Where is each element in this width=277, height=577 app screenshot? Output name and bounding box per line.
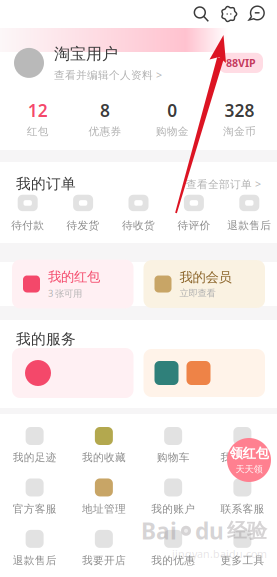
- button[interactable]: 12: [4, 99, 71, 138]
- button[interactable]: 退款售后: [222, 193, 277, 232]
- button[interactable]: 购物车: [138, 427, 208, 464]
- staticText: 购物金: [156, 125, 189, 138]
- staticText: 红包: [27, 125, 49, 138]
- staticText: 立即查看: [179, 287, 215, 299]
- button[interactable]: 查看全部订单 >: [186, 177, 261, 191]
- button[interactable]: 我的收藏: [69, 427, 138, 464]
- button[interactable]: 我的会员: [143, 260, 265, 308]
- staticText: 更多工具: [220, 554, 264, 567]
- button[interactable]: 我要开店: [69, 530, 138, 567]
- staticText: 退款售后: [227, 219, 271, 232]
- staticText: 3 张可用: [48, 287, 82, 299]
- button[interactable]: 待收货: [111, 193, 166, 232]
- button[interactable]: 退款售后: [0, 530, 69, 567]
- staticText: 待付款: [11, 219, 44, 232]
- staticText: 优惠券: [88, 125, 121, 138]
- staticText: 我的足迹: [13, 451, 57, 464]
- button[interactable]: 我的账户: [138, 478, 208, 515]
- staticText: 待收货: [122, 219, 155, 232]
- staticText: 地址管理: [82, 502, 126, 515]
- button[interactable]: 0: [138, 99, 206, 138]
- staticText: Bai: [141, 516, 177, 546]
- button[interactable]: 更多工具: [208, 530, 277, 567]
- staticText: 经验: [227, 518, 267, 543]
- staticText: 购物车: [157, 451, 190, 464]
- staticText: 我的优惠: [151, 554, 195, 567]
- staticText: 查看全部订单 >: [186, 177, 261, 191]
- button[interactable]: 我的红包: [12, 260, 133, 308]
- button[interactable]: 待付款: [0, 193, 55, 232]
- staticText: du: [195, 516, 224, 546]
- button[interactable]: 待发货: [55, 193, 111, 232]
- staticText: 0: [167, 99, 177, 122]
- button[interactable]: 88VIP: [219, 53, 263, 73]
- staticText: 12: [28, 99, 48, 122]
- staticText: 联系客服: [220, 502, 264, 515]
- button[interactable]: Claim coupon: [227, 438, 271, 482]
- button[interactable]: 我的评价: [208, 427, 277, 464]
- staticText: 我的会员: [179, 269, 231, 285]
- staticText: 我的账户: [151, 502, 195, 515]
- button[interactable]: 我的足迹: [0, 427, 69, 464]
- staticText: 淘金币: [223, 125, 256, 138]
- button[interactable]: [12, 348, 133, 398]
- button[interactable]: 待评价: [166, 193, 222, 232]
- button[interactable]: 官方客服: [0, 478, 69, 515]
- staticText: 查看并编辑个人资料 >: [54, 68, 162, 82]
- button[interactable]: 8: [71, 99, 138, 138]
- staticText: 退款售后: [13, 554, 57, 567]
- button[interactable]: 328: [206, 99, 273, 138]
- staticText: 官方客服: [13, 502, 57, 515]
- button[interactable]: 地址管理: [69, 478, 138, 515]
- staticText: 我的订单: [16, 175, 76, 193]
- staticText: 淘宝用户: [54, 44, 118, 64]
- staticText: 我要开店: [82, 554, 126, 567]
- staticText: 我的评价: [220, 451, 264, 464]
- staticText: 待发货: [67, 219, 100, 232]
- staticText: 待评价: [177, 219, 210, 232]
- staticText: 8: [100, 99, 110, 122]
- staticText: jingyan.baidu.com: [172, 547, 267, 561]
- staticText: 我的服务: [16, 330, 76, 348]
- button[interactable]: 我的优惠: [138, 530, 208, 567]
- staticText: 我的收藏: [82, 451, 126, 464]
- button[interactable]: Discover: [217, 2, 241, 26]
- staticText: 328: [224, 99, 254, 122]
- button[interactable]: Messages: [245, 2, 269, 26]
- button[interactable]: Search: [189, 2, 213, 26]
- staticText: 领红包: [229, 445, 268, 461]
- staticText: 88VIP: [226, 56, 256, 70]
- staticText: 我的红包: [48, 269, 100, 285]
- staticText: 天天领: [235, 463, 262, 475]
- button[interactable]: 联系客服: [208, 478, 277, 515]
- button[interactable]: [143, 349, 265, 397]
